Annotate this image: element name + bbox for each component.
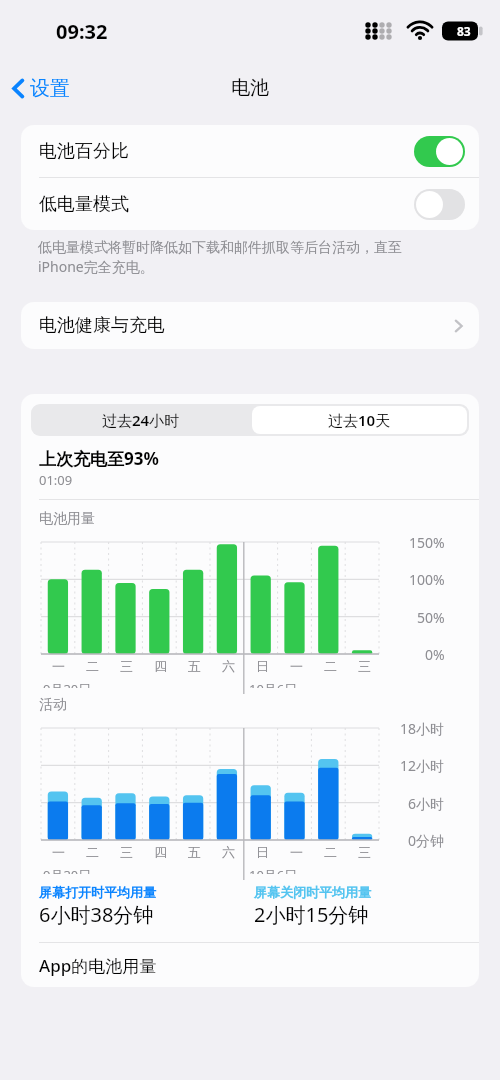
staticText: 电池 xyxy=(231,76,269,100)
staticText: 9月30日 xyxy=(43,866,92,874)
button[interactable]: 电池健康与充电 xyxy=(21,302,479,349)
staticText: App的电池用量 xyxy=(39,954,157,977)
staticText: 三 xyxy=(120,844,133,860)
staticText: 6小时38分钟 xyxy=(39,901,154,928)
staticText: 10月6日 xyxy=(249,866,298,874)
staticText: 电池百分比 xyxy=(39,140,414,163)
button[interactable]: 低电量模式 xyxy=(21,178,479,230)
staticText: 一 xyxy=(290,658,303,674)
button[interactable]: App的电池用量 xyxy=(21,943,479,987)
staticText: 电池用量 xyxy=(39,510,95,528)
staticText: 09:32 xyxy=(56,18,108,45)
staticText: 二 xyxy=(324,844,337,860)
staticText: 二 xyxy=(324,658,337,674)
staticText: 屏幕关闭时平均用量 xyxy=(254,884,371,900)
staticText: 低电量模式 xyxy=(39,193,414,216)
staticText: 过去10天 xyxy=(328,410,391,430)
staticText: 一 xyxy=(290,844,303,860)
staticText: 四 xyxy=(154,844,167,860)
staticText: 六 xyxy=(222,658,235,674)
staticText: 2小时15分钟 xyxy=(254,901,369,928)
staticText: 0% xyxy=(425,645,445,664)
staticText: 150% xyxy=(409,533,445,552)
staticText: 18小时 xyxy=(400,719,445,738)
staticText: 三 xyxy=(120,658,133,674)
staticText: 日 xyxy=(256,658,269,674)
staticText: 二 xyxy=(86,844,99,860)
staticText: 一 xyxy=(52,844,65,860)
staticText: 上次充电至93% xyxy=(39,447,159,470)
staticText: 屏幕打开时平均用量 xyxy=(39,884,156,900)
staticText: 83 xyxy=(457,23,471,39)
staticText: 100% xyxy=(409,570,445,589)
staticText: 日 xyxy=(256,844,269,860)
staticText: 五 xyxy=(188,658,201,674)
staticText: 6小时 xyxy=(408,794,445,813)
staticText: 设置 xyxy=(30,76,70,101)
staticText: 过去24小时 xyxy=(102,410,180,430)
staticText: 活动 xyxy=(39,696,67,714)
staticText: 10月6日 xyxy=(249,680,298,688)
staticText: 12小时 xyxy=(400,756,445,775)
staticText: 三 xyxy=(358,658,371,674)
staticText: 50% xyxy=(417,608,445,627)
staticText: 01:09 xyxy=(39,471,73,489)
staticText: 一 xyxy=(52,658,65,674)
staticText: 四 xyxy=(154,658,167,674)
button[interactable]: Back to 设置 xyxy=(0,68,80,109)
staticText: 9月30日 xyxy=(43,680,92,688)
button[interactable]: 电池百分比 xyxy=(21,125,479,177)
staticText: 五 xyxy=(188,844,201,860)
staticText: 六 xyxy=(222,844,235,860)
staticText: 低电量模式将暫时降低如下载和邮件抓取等后台活动，直至 iPhone完全充电。 xyxy=(38,239,402,276)
staticText: 电池健康与充电 xyxy=(39,314,454,337)
button[interactable]: 低电量模式 off xyxy=(414,189,465,220)
button[interactable]: 电池百分比 on xyxy=(414,136,465,167)
staticText: 三 xyxy=(358,844,371,860)
staticText: 0分钟 xyxy=(408,831,445,850)
button[interactable]: 过去10天 xyxy=(252,406,467,434)
button[interactable]: 过去24小时 xyxy=(31,404,250,436)
staticText: 二 xyxy=(86,658,99,674)
